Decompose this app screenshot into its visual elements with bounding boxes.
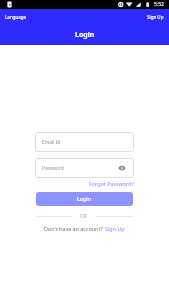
button[interactable]: Sign Up xyxy=(105,225,125,232)
staticText: Login xyxy=(75,30,95,40)
button[interactable]: Email Id xyxy=(35,132,134,152)
button[interactable]: Language xyxy=(4,13,28,21)
staticText: Don't have an account? xyxy=(44,225,105,232)
button[interactable]: Login xyxy=(36,192,133,206)
button[interactable]: Password xyxy=(35,158,134,178)
button[interactable]: Sign Up xyxy=(146,13,165,21)
button[interactable]: Forgot Password? xyxy=(89,178,134,189)
staticText: OR xyxy=(80,213,88,220)
staticText: Email Id xyxy=(42,139,61,146)
button[interactable]: Show password xyxy=(117,163,127,173)
staticText: Password xyxy=(42,165,64,172)
staticText: 5:52 xyxy=(154,1,164,8)
staticText: Login xyxy=(77,195,92,202)
